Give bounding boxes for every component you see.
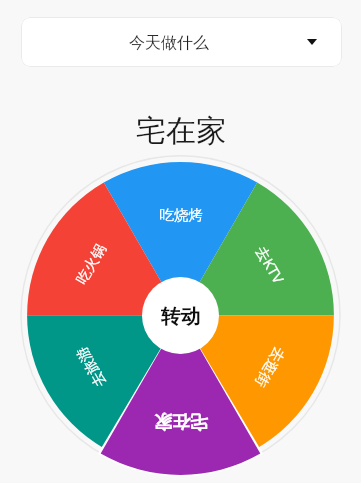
button[interactable]: 转动: [142, 277, 219, 354]
staticText: 宅在家: [154, 410, 208, 433]
staticText: 去KTV: [251, 242, 289, 287]
staticText: 去逛街: [251, 343, 289, 390]
staticText: 吃烧烤: [159, 206, 203, 224]
staticText: 去旅游: [72, 343, 110, 390]
button[interactable]: 今天做什么: [21, 17, 342, 67]
staticText: 吃火锅: [72, 240, 110, 287]
staticText: 今天做什么: [129, 33, 209, 53]
staticText: 宅在家: [136, 112, 226, 148]
other: Open list: [307, 39, 317, 45]
staticText: 转动: [161, 304, 200, 329]
